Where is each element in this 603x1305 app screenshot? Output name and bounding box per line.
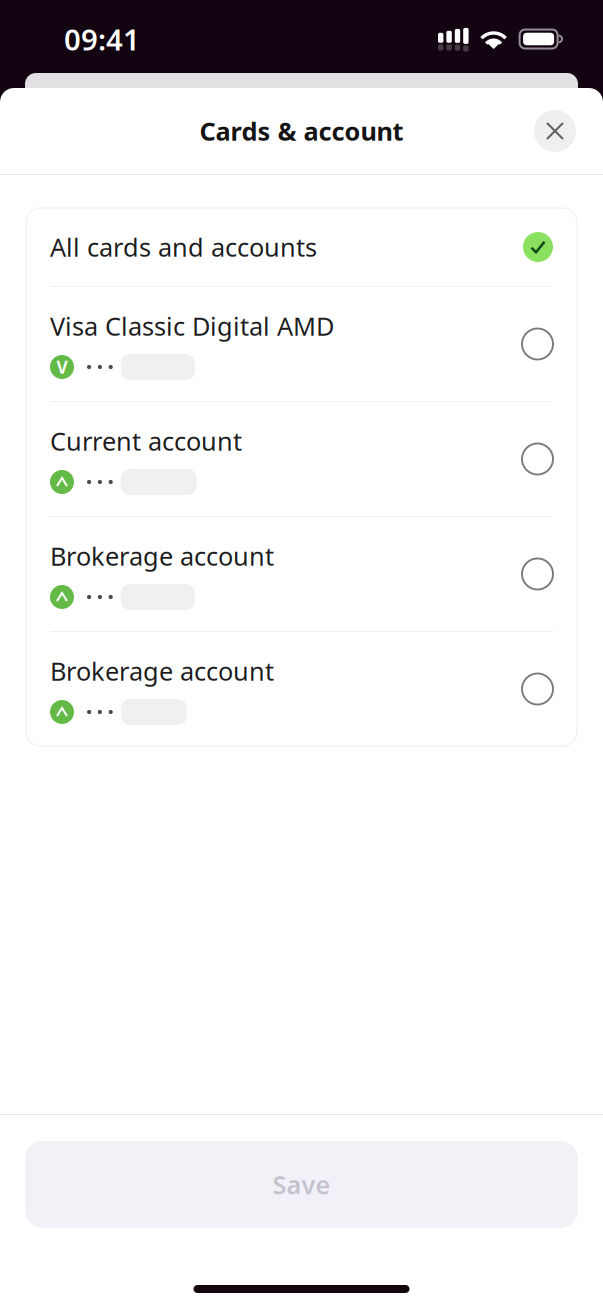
staticText: Save (272, 1168, 330, 1201)
button[interactable]: Current account (26, 402, 577, 516)
staticText: V (56, 355, 67, 378)
staticText: Current account (50, 424, 242, 458)
staticText: Cards & account (199, 114, 403, 148)
button[interactable]: Save (25, 1141, 578, 1228)
button[interactable]: Close (534, 110, 576, 152)
staticText: Brokerage account (50, 539, 274, 573)
button[interactable]: Brokerage account (26, 632, 577, 746)
staticText: Brokerage account (50, 654, 274, 688)
staticText: Visa Classic Digital AMD (50, 309, 334, 343)
staticText: All cards and accounts (50, 230, 317, 264)
button[interactable]: All cards and accounts (26, 208, 577, 286)
staticText: 09:41 (64, 19, 140, 58)
button[interactable]: Brokerage account (26, 517, 577, 631)
button[interactable]: Visa Classic Digital AMD (26, 287, 577, 401)
